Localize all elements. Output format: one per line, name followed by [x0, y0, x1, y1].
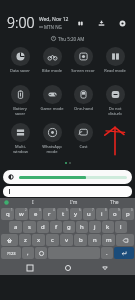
- staticText: c: [51, 236, 54, 244]
- staticText: h: [80, 223, 84, 231]
- staticText: Do not disturb: [108, 106, 122, 116]
- button[interactable]: Recents: [23, 261, 37, 275]
- button[interactable]: w: [15, 208, 28, 220]
- staticText: p: [126, 210, 130, 218]
- button[interactable]: v: [60, 234, 73, 246]
- button[interactable]: Settings: [116, 17, 128, 29]
- button[interactable]: Backspace: [116, 234, 134, 246]
- button[interactable]: Battery saver: [5, 83, 35, 121]
- staticText: Screen recor: [71, 68, 95, 73]
- button[interactable]: y: [70, 208, 82, 220]
- button[interactable]: The: [94, 198, 135, 207]
- staticText: Battery saver: [13, 106, 27, 116]
- staticText: r: [48, 210, 51, 218]
- staticText: I'm: [70, 199, 78, 206]
- button[interactable]: s: [23, 221, 36, 233]
- staticText: 7: [92, 208, 94, 212]
- staticText: Game mode: [40, 106, 64, 111]
- button[interactable]: a: [9, 221, 22, 233]
- staticText: l: [120, 223, 122, 231]
- button[interactable]: Game mode: [37, 83, 67, 121]
- staticText: Bike mode: [42, 68, 62, 73]
- button[interactable]: One-hand: [68, 83, 98, 121]
- button[interactable]: i: [96, 208, 108, 220]
- button[interactable]: .: [101, 247, 113, 259]
- button[interactable]: m: [102, 234, 115, 246]
- staticText: One-hand: [74, 106, 93, 111]
- button[interactable]: Cast: [68, 121, 98, 159]
- staticText: WhatsApp mode: [42, 144, 62, 154]
- staticText: o: [113, 210, 117, 218]
- staticText: 9: [118, 208, 120, 212]
- staticText: MTN NG: [44, 24, 62, 30]
- button[interactable]: u: [83, 208, 95, 220]
- staticText: e: [34, 210, 38, 218]
- button[interactable]: Search: [3, 186, 132, 197]
- button[interactable]: p: [122, 208, 134, 220]
- button[interactable]: Data saver: [5, 45, 35, 83]
- staticText: q: [6, 210, 10, 218]
- button[interactable]: Enter: [114, 247, 134, 259]
- button[interactable]: Read mode: [100, 45, 130, 83]
- button[interactable]: Screen recor: [68, 45, 98, 83]
- button[interactable]: Shift: [1, 234, 18, 246]
- button[interactable]: q: [1, 208, 14, 220]
- button[interactable]: e: [29, 208, 42, 220]
- button[interactable]: Emoji: [35, 247, 47, 259]
- staticText: 3: [39, 208, 41, 212]
- button[interactable]: o: [109, 208, 121, 220]
- staticText: Read mode: [104, 68, 126, 73]
- button[interactable]: z: [19, 234, 31, 246]
- button[interactable]: t: [57, 208, 69, 220]
- button[interactable]: Back: [98, 261, 112, 275]
- button[interactable]: I: [12, 198, 53, 207]
- staticText: 8: [105, 208, 107, 212]
- staticText: y: [74, 210, 78, 218]
- button[interactable]: ,: [22, 247, 34, 259]
- button[interactable]: f: [50, 221, 62, 233]
- button[interactable]: r: [43, 208, 56, 220]
- staticText: 9:00: [7, 13, 35, 32]
- button[interactable]: x: [32, 234, 45, 246]
- button[interactable]: h: [76, 221, 88, 233]
- button[interactable]: Do not disturb: [100, 83, 130, 121]
- button[interactable]: I'm: [53, 198, 94, 207]
- button[interactable]: c: [46, 234, 59, 246]
- button[interactable]: l: [115, 221, 127, 233]
- staticText: v: [65, 236, 69, 244]
- staticText: ,: [27, 249, 29, 257]
- button[interactable]: d: [37, 221, 49, 233]
- staticText: s: [28, 223, 31, 231]
- button[interactable]: b: [74, 234, 87, 246]
- staticText: Wed, Nov 12: [39, 16, 69, 23]
- staticText: 4: [53, 208, 55, 212]
- button[interactable]: n: [88, 234, 101, 246]
- staticText: i: [101, 210, 103, 218]
- button[interactable]: Bike mode: [37, 45, 67, 83]
- staticText: Thu 5:20 AM: [58, 36, 85, 42]
- button[interactable]: Users: [74, 17, 86, 29]
- button[interactable]: g: [63, 221, 75, 233]
- button[interactable]: Home: [61, 261, 75, 275]
- staticText: j: [94, 223, 96, 231]
- staticText: 2: [25, 208, 27, 212]
- button[interactable]: ?123: [1, 247, 21, 259]
- button[interactable]: j: [89, 221, 101, 233]
- staticText: ?123: [7, 251, 16, 256]
- staticText: Cast: [79, 144, 88, 149]
- staticText: b: [79, 236, 83, 244]
- button[interactable]: Multi- window: [5, 121, 35, 159]
- staticText: d: [41, 223, 45, 231]
- staticText: n: [93, 236, 97, 244]
- button[interactable]: k: [102, 221, 114, 233]
- staticText: m: [106, 236, 112, 244]
- staticText: 1: [11, 208, 13, 212]
- button[interactable]: Brightness: [3, 170, 132, 184]
- button[interactable]: Power: [95, 17, 107, 29]
- staticText: 0: [131, 208, 133, 212]
- button[interactable]: WhatsApp mode: [37, 121, 67, 159]
- staticText: k: [106, 223, 110, 231]
- staticText: 5: [66, 208, 68, 212]
- staticText: 6: [79, 208, 81, 212]
